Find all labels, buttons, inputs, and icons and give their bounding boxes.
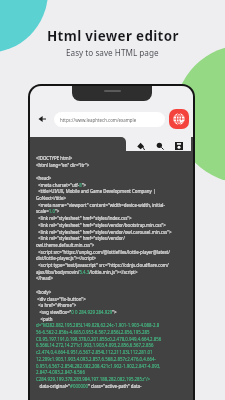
staticText: <path	[36, 316, 53, 322]
staticText: <link rel="stylesheet" href="styles/vend…	[36, 222, 166, 228]
staticText: <svg viewBox="0 0 284.929 284.929">	[36, 309, 117, 315]
staticText: Easy to save HTML page	[66, 47, 159, 58]
staticText: <script type="text/javascript" src="http…	[36, 262, 169, 268]
staticText: scale=1.0">	[36, 208, 60, 214]
staticText: <link rel="stylesheet" href="styles/inde…	[36, 215, 132, 221]
staticText: ajax/libs/bodymovin/5.4.3/lottie.min.js"…	[36, 269, 138, 275]
staticText: <body>	[36, 289, 52, 295]
staticText: <link rel="stylesheet" href="styles/vend…	[36, 235, 125, 241]
staticText: <!DOCTYPE html>	[36, 155, 73, 161]
button[interactable]: https://www.leaphtech.com/example	[54, 112, 165, 127]
staticText: </head>	[36, 275, 54, 281]
button[interactable]: Save	[172, 139, 185, 152]
staticText: GoNext</title>	[36, 195, 67, 201]
staticText: C284.929,199.378,283.984,197.188,282.082…	[36, 376, 151, 382]
staticText: data-original="#000000" class="active-pa…	[36, 383, 142, 389]
staticText: d="M282.082,195.285L149.028,62.24c-1.901…	[36, 322, 160, 328]
staticText: <meta name="viewport" content="width=dev…	[36, 202, 165, 208]
staticText: dist/lottie-player.js"></script>	[36, 255, 97, 261]
staticText: https://www.leaphtech.com/example	[60, 117, 137, 123]
staticText: 12.209c1.903,1.903,4.093,2.857,6.568,2.8…	[36, 356, 156, 362]
button[interactable]: Back	[35, 112, 48, 125]
staticText: 6.566L14.272,14.271c1.903,1.903,4.093,2.…	[36, 342, 154, 348]
staticText: <meta charset="utf-8">	[36, 182, 87, 188]
staticText: <link rel="stylesheet" href="styles/vend…	[36, 229, 172, 235]
staticText: 2.847-4.093,2.847-6.566	[36, 369, 85, 375]
staticText: <div class="fix-button">	[36, 296, 86, 302]
staticText: C0.95,197.191,0,199.378,0,201.855c0,2.47…	[36, 336, 162, 342]
staticText: Html viewer editor	[47, 27, 179, 45]
staticText: <head>	[36, 175, 52, 181]
staticText: c2.474,0,4.664-0.951,6.567-2.854L112,211…	[36, 349, 153, 355]
staticText: <title>UI/UX, Mobile and Game Developmen…	[36, 188, 156, 194]
staticText: <a href="#home">	[36, 302, 77, 308]
staticText: 0.951,6.567-2.854L282.082,208.421c1.902-…	[36, 363, 161, 369]
staticText: <script src="https://unpkg.com/@lottiefi…	[36, 249, 170, 255]
button[interactable]: Open web page	[169, 109, 189, 129]
staticText: 56-6.562-2.856s-4.665,0.953-6.567,2.856L…	[36, 329, 150, 335]
button[interactable]: Search	[153, 139, 166, 152]
staticText: <html lang="en" dir="ltr">	[36, 162, 90, 168]
button[interactable]: Format	[134, 139, 147, 152]
staticText: owl.theme.default.min.css">	[36, 242, 95, 248]
